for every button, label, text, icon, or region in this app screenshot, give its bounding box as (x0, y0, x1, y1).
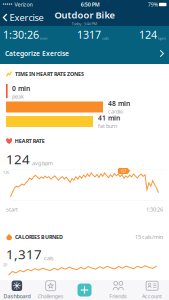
staticText: Outdoor Bike (54, 9, 114, 21)
staticText: peak (12, 93, 24, 100)
staticText: 41 min (98, 113, 120, 122)
staticText: bpm (158, 35, 166, 41)
staticText: 1,317 (6, 245, 42, 263)
staticText: cals (44, 255, 54, 262)
staticText: 124 (6, 150, 30, 168)
staticText: 124 (139, 27, 157, 42)
staticText: avg bpm (32, 160, 53, 167)
staticText: Today, 3:44 PM (71, 21, 97, 26)
staticText: Start (6, 206, 18, 213)
button[interactable]: Exercise (0, 9, 43, 26)
staticText: 1317 (77, 27, 101, 42)
staticText: Exercise (9, 11, 43, 24)
staticText: cals (102, 35, 109, 41)
staticText: HEART RATE (15, 137, 45, 145)
staticText: 15 cals/min (135, 233, 163, 241)
staticText: 126 (3, 169, 9, 175)
staticText: Friends (109, 293, 127, 300)
staticText: min (40, 35, 47, 41)
staticText: 20 (3, 262, 7, 267)
staticText: Account (142, 293, 162, 300)
staticText: Challenges (38, 293, 64, 300)
staticText: 79% (148, 1, 158, 8)
staticText: CALORIES BURNED (15, 233, 63, 241)
staticText: 1:30:26 (3, 27, 39, 42)
staticText: 6:50 PM (81, 1, 100, 8)
staticText: TIME IN HEART RATE ZONES (15, 70, 84, 78)
staticText: fat burn (98, 122, 117, 129)
button[interactable]: Challenges (34, 280, 68, 300)
button[interactable]: Categorize Exercise (0, 43, 169, 64)
staticText: cardio (108, 108, 123, 115)
staticText: Categorize Exercise (5, 49, 69, 58)
staticText: Dashboard (3, 293, 30, 300)
staticText: 157 (120, 168, 126, 174)
staticText: 0 min (12, 84, 30, 93)
staticText: ••••• Verizon (2, 1, 32, 8)
button[interactable]: Dashboard (0, 280, 34, 300)
button[interactable]: Account (135, 280, 169, 300)
button[interactable]: Friends (101, 280, 135, 300)
staticText: 48 min (108, 99, 130, 108)
button[interactable]: Add (68, 280, 101, 300)
staticText: 1:30:26 (146, 206, 163, 213)
